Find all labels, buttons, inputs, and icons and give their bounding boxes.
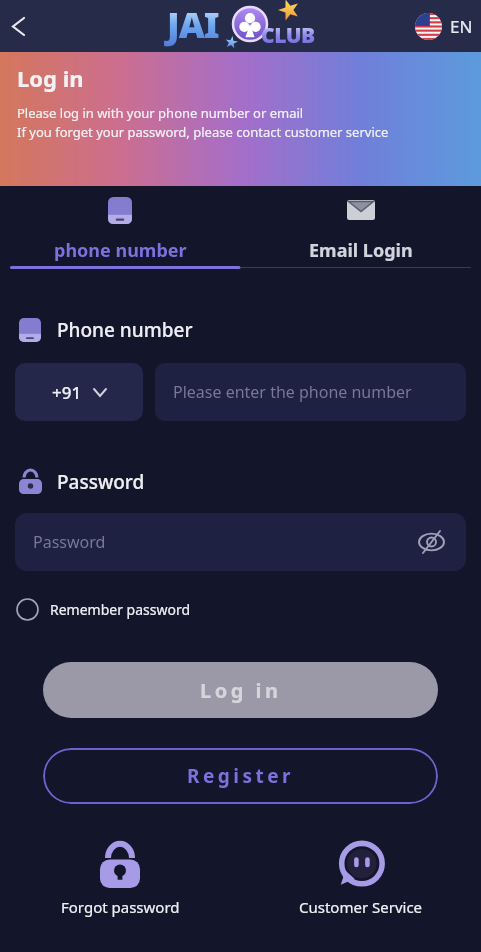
staticText: If you forget your password, please cont… — [17, 123, 389, 141]
staticText: Remember password — [50, 600, 191, 619]
button[interactable]: Customer Service — [240, 842, 481, 917]
staticText: Phone number — [57, 317, 193, 343]
staticText: Log in — [17, 63, 84, 93]
button[interactable]: Register — [43, 748, 438, 804]
staticText: Please enter the phone number — [173, 381, 412, 403]
staticText: JAI — [167, 0, 219, 49]
staticText: Password — [33, 531, 106, 553]
button[interactable]: Remember password — [16, 598, 191, 621]
staticText: Customer Service — [299, 897, 423, 917]
staticText: Password — [57, 469, 145, 495]
button[interactable]: EN — [415, 13, 473, 40]
button[interactable]: phone number — [0, 186, 240, 263]
staticText: EN — [450, 15, 473, 38]
button[interactable]: Please enter the phone number — [155, 363, 466, 421]
button[interactable]: +91 — [15, 363, 143, 421]
staticText: phone number — [54, 238, 187, 263]
staticText: Register — [187, 763, 295, 789]
staticText: Log in — [200, 677, 282, 704]
staticText: Email Login — [309, 238, 413, 263]
button[interactable]: Password — [15, 513, 466, 571]
button[interactable]: Email Login — [240, 186, 481, 263]
staticText: CLUB — [261, 21, 315, 50]
button[interactable] — [13, 18, 24, 35]
button[interactable]: Forgot password — [0, 842, 240, 917]
staticText: Forgot password — [61, 897, 180, 917]
button[interactable]: Log in — [43, 662, 438, 718]
staticText: +91 — [52, 381, 82, 404]
staticText: Please log in with your phone number or … — [17, 104, 304, 122]
